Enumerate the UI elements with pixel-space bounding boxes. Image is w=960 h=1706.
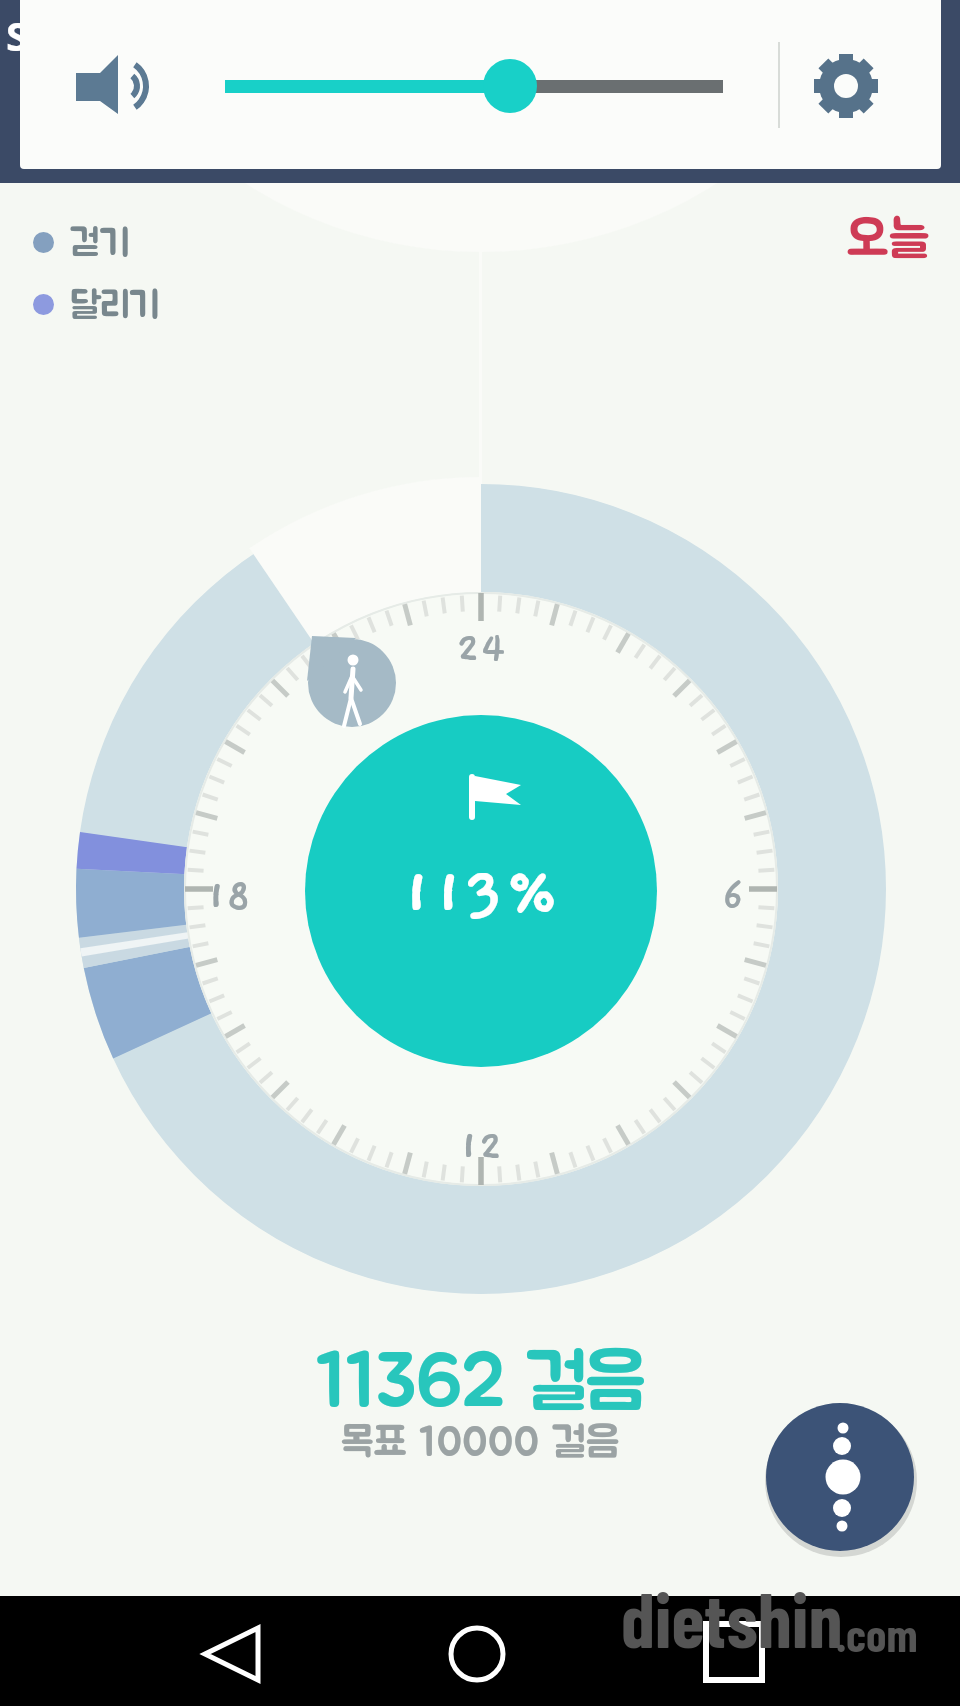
- button[interactable]: 달리기: [20, 284, 180, 326]
- staticText: 달리기: [70, 287, 160, 324]
- staticText: 24: [441, 626, 521, 672]
- staticText: 걷기: [70, 225, 131, 262]
- staticText: 오늘: [836, 214, 940, 266]
- button[interactable]: [812, 52, 880, 120]
- staticText: 12: [441, 1124, 521, 1170]
- staticText: 6: [693, 874, 773, 920]
- button[interactable]: [766, 1403, 914, 1551]
- staticText: 11362 걸음: [180, 1346, 780, 1422]
- button[interactable]: 오늘: [836, 210, 940, 270]
- staticText: S: [6, 8, 29, 62]
- button[interactable]: 걷기: [20, 222, 160, 264]
- button[interactable]: [432, 1598, 522, 1688]
- staticText: dietshin: [621, 1592, 843, 1663]
- button[interactable]: [180, 1598, 270, 1688]
- staticText: 18: [189, 874, 269, 920]
- staticText: 목표 10000 걸음: [180, 1422, 780, 1464]
- button[interactable]: [688, 1598, 778, 1688]
- staticText: .com: [836, 1606, 918, 1661]
- staticText: 113%: [361, 857, 601, 931]
